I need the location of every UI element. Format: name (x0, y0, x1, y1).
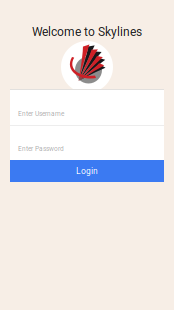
staticText: Login (76, 166, 98, 176)
button[interactable]: Enter Password (10, 126, 164, 160)
staticText: Welcome to Skylines (32, 25, 142, 39)
button[interactable]: Enter Username (10, 90, 164, 125)
staticText: Enter Password (18, 145, 64, 153)
staticText: Enter Username (18, 110, 64, 118)
button[interactable]: Login (10, 160, 164, 182)
